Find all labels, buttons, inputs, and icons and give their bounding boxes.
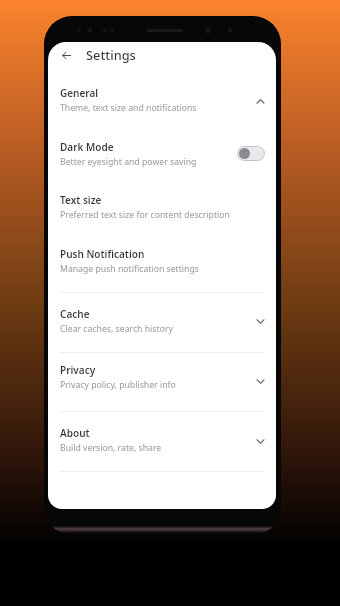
button[interactable]: Expand bbox=[251, 372, 269, 390]
button[interactable]: Dark Mode bbox=[237, 146, 265, 161]
button[interactable]: Expand bbox=[251, 312, 269, 330]
staticText: About bbox=[60, 426, 90, 440]
staticText: Privacy policy, publisher info bbox=[60, 379, 176, 391]
staticText: Push Notification bbox=[60, 247, 145, 261]
button[interactable]: General bbox=[60, 86, 250, 114]
staticText: Cache bbox=[60, 307, 90, 321]
button[interactable]: Expand bbox=[251, 432, 269, 450]
staticText: Theme, text size and notifications bbox=[60, 102, 197, 114]
staticText: Text size bbox=[60, 193, 102, 207]
staticText: Preferred text size for content descript… bbox=[60, 209, 230, 221]
button[interactable]: Push Notification bbox=[60, 247, 250, 275]
staticText: Privacy bbox=[60, 363, 96, 377]
staticText: Dark Mode bbox=[60, 140, 114, 154]
button[interactable]: Cache bbox=[60, 307, 250, 335]
staticText: Settings bbox=[86, 46, 136, 63]
staticText: Build version, rate, share bbox=[60, 442, 162, 454]
button[interactable]: Back bbox=[58, 47, 74, 63]
staticText: Clear caches, search history bbox=[60, 323, 173, 335]
button[interactable]: Dark Mode bbox=[60, 140, 250, 168]
staticText: General bbox=[60, 86, 99, 100]
button[interactable]: Text size bbox=[60, 193, 250, 221]
staticText: Manage push notification settings bbox=[60, 263, 199, 275]
button[interactable]: Collapse bbox=[251, 92, 269, 110]
staticText: Better eyesight and power saving bbox=[60, 156, 197, 168]
button[interactable]: About bbox=[60, 426, 250, 454]
button[interactable]: Privacy bbox=[60, 363, 250, 391]
